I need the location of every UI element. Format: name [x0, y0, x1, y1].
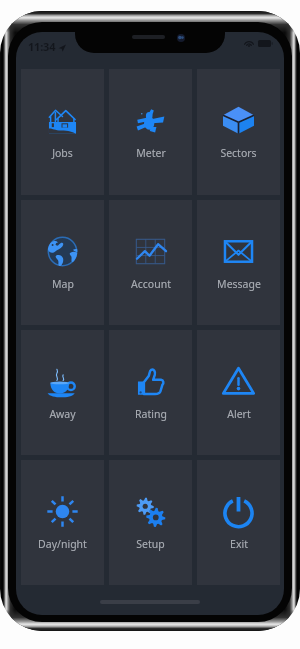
staticText: Message — [217, 277, 261, 291]
staticText: Setup — [136, 537, 165, 551]
button[interactable]: Message — [197, 200, 280, 325]
staticText: Map — [52, 277, 74, 291]
staticText: Account — [131, 277, 171, 291]
button[interactable]: Setup — [109, 460, 192, 585]
button[interactable]: Meter — [109, 69, 192, 195]
staticText: Sectors — [220, 146, 257, 160]
button[interactable]: Day/night — [21, 460, 104, 585]
staticText: Meter — [136, 146, 166, 160]
button[interactable]: Away — [21, 330, 104, 455]
staticText: Alert — [227, 407, 251, 421]
staticText: Jobs — [52, 146, 73, 160]
staticText: Exit — [230, 537, 248, 551]
button[interactable]: Jobs — [21, 69, 104, 195]
button[interactable]: Account — [109, 200, 192, 325]
staticText: Day/night — [38, 537, 87, 551]
button[interactable]: Exit — [197, 460, 280, 585]
button[interactable]: Sectors — [197, 69, 280, 195]
button[interactable]: Rating — [109, 330, 192, 455]
button[interactable]: Alert — [197, 330, 280, 455]
staticText: 11:34 — [28, 39, 56, 54]
staticText: Rating — [135, 407, 167, 421]
button[interactable]: Map — [21, 200, 104, 325]
staticText: Away — [49, 407, 76, 421]
